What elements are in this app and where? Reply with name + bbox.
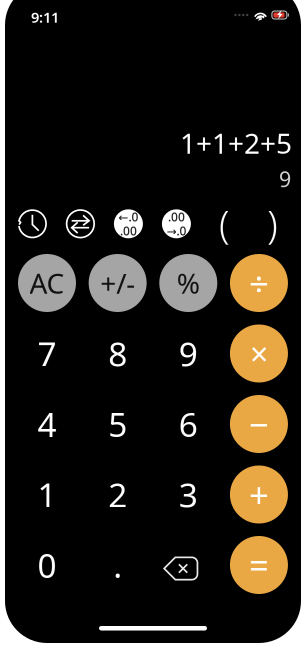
- staticText: 5: [108, 402, 127, 446]
- button[interactable]: 7: [18, 324, 76, 382]
- staticText: 3: [179, 472, 198, 517]
- button[interactable]: ×: [230, 324, 288, 382]
- button[interactable]: Unit converter: [56, 206, 104, 242]
- staticText: 1+1+2+5: [180, 124, 292, 162]
- staticText: 9: [279, 165, 291, 193]
- button[interactable]: 0: [18, 536, 76, 594]
- staticText: 2: [108, 472, 127, 517]
- staticText: ×: [250, 332, 268, 375]
- button[interactable]: .: [89, 536, 147, 594]
- button[interactable]: 5: [89, 395, 147, 453]
- button[interactable]: −: [230, 395, 288, 453]
- button[interactable]: Delete: [159, 536, 217, 594]
- button[interactable]: More decimal places: [152, 206, 200, 242]
- staticText: .00: [168, 209, 185, 225]
- button[interactable]: =: [230, 536, 288, 594]
- staticText: .: [113, 543, 122, 587]
- staticText: 8: [108, 331, 127, 376]
- staticText: .00: [120, 223, 137, 239]
- button[interactable]: 6: [159, 395, 217, 453]
- staticText: →.0: [166, 223, 186, 239]
- staticText: (: [219, 198, 230, 249]
- staticText: AC: [29, 264, 64, 302]
- button[interactable]: Close parenthesis: [248, 206, 296, 242]
- button[interactable]: 4: [18, 395, 76, 453]
- staticText: =: [249, 542, 269, 588]
- button[interactable]: 1: [18, 465, 76, 523]
- button[interactable]: History: [8, 206, 56, 242]
- button[interactable]: Open parenthesis: [200, 206, 248, 242]
- staticText: 6: [179, 402, 198, 446]
- staticText: ): [267, 198, 278, 249]
- button[interactable]: AC: [18, 254, 76, 312]
- staticText: 0: [37, 543, 56, 587]
- staticText: +: [249, 471, 269, 517]
- staticText: −: [249, 401, 269, 447]
- staticText: 7: [37, 331, 56, 376]
- button[interactable]: +/-: [89, 254, 147, 312]
- button[interactable]: +: [230, 465, 288, 523]
- staticText: 4: [37, 402, 56, 446]
- staticText: %: [177, 264, 200, 302]
- button[interactable]: 9: [159, 324, 217, 382]
- button[interactable]: 3: [159, 465, 217, 523]
- staticText: ÷: [249, 260, 269, 306]
- button[interactable]: 8: [89, 324, 147, 382]
- button[interactable]: 2: [89, 465, 147, 523]
- staticText: +/-: [100, 264, 135, 302]
- staticText: ←.0: [118, 209, 138, 225]
- staticText: 9: [179, 331, 198, 376]
- button[interactable]: ÷: [230, 254, 288, 312]
- staticText: 1: [37, 472, 56, 517]
- button[interactable]: Fewer decimal places: [104, 206, 152, 242]
- staticText: 9:11: [31, 7, 59, 27]
- button[interactable]: %: [159, 254, 217, 312]
